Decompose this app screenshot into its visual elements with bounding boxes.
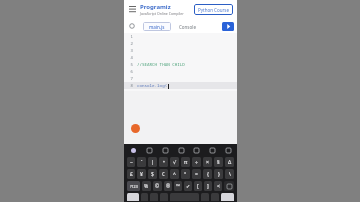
staticText: ] bbox=[207, 183, 209, 190]
staticText: ™ bbox=[176, 183, 180, 190]
staticText: 4 bbox=[130, 55, 133, 60]
button[interactable]: Enter bbox=[221, 193, 234, 201]
button[interactable]: % bbox=[142, 181, 151, 191]
button[interactable]: π bbox=[181, 157, 190, 167]
staticText: £ bbox=[130, 171, 133, 178]
button[interactable]: = bbox=[192, 169, 201, 179]
button[interactable]: Python Course bbox=[194, 4, 233, 15]
staticText: 7 bbox=[130, 76, 133, 81]
staticText: Δ bbox=[228, 159, 232, 166]
staticText: ✓ bbox=[186, 183, 191, 189]
staticText: JavaScript Online Compiler bbox=[140, 11, 184, 16]
button[interactable]: Translate bbox=[191, 145, 201, 155]
button[interactable]: £ bbox=[127, 169, 135, 179]
staticText: Programiz bbox=[140, 3, 171, 11]
button[interactable]: ABC bbox=[127, 193, 139, 201]
button[interactable]: • bbox=[159, 157, 168, 167]
staticText: × bbox=[206, 159, 209, 166]
button[interactable]: § bbox=[214, 157, 223, 167]
button[interactable]: Sticker bbox=[144, 145, 154, 155]
button[interactable]: ¥ bbox=[137, 169, 146, 179]
button[interactable]: [ bbox=[194, 181, 202, 191]
button[interactable]: √ bbox=[170, 157, 179, 167]
button[interactable]: main.js bbox=[143, 22, 171, 31]
button[interactable]: Run bbox=[222, 22, 234, 31]
button[interactable]: ÷ bbox=[192, 157, 201, 167]
button[interactable]: ® bbox=[164, 181, 172, 191]
staticText: ?123 bbox=[130, 184, 138, 189]
button[interactable]: Backspace bbox=[224, 181, 234, 191]
button[interactable]: < bbox=[214, 181, 222, 191]
button[interactable]: $ bbox=[148, 169, 157, 179]
button[interactable]: Voice input bbox=[223, 145, 233, 155]
staticText: π bbox=[184, 159, 188, 166]
button[interactable]: ✓ bbox=[184, 181, 192, 191]
staticText: © bbox=[155, 183, 160, 190]
staticText: ~ bbox=[130, 159, 133, 166]
staticText: ` bbox=[141, 159, 143, 166]
staticText: ¥ bbox=[140, 171, 143, 178]
button[interactable]: Console bbox=[176, 22, 199, 31]
staticText: 5 bbox=[130, 62, 133, 67]
button[interactable]: GIF bbox=[160, 145, 170, 155]
staticText: } bbox=[218, 171, 220, 178]
button[interactable]: © bbox=[153, 181, 162, 191]
staticText: 8 bbox=[130, 83, 133, 88]
button[interactable]: × bbox=[203, 157, 212, 167]
button[interactable]: Format code bbox=[127, 21, 137, 31]
button[interactable]: ^ bbox=[170, 169, 179, 179]
button[interactable]: Comma bbox=[141, 193, 148, 201]
button[interactable]: } bbox=[214, 169, 223, 179]
staticText: ® bbox=[166, 183, 171, 190]
button[interactable]: \ bbox=[225, 169, 234, 179]
staticText: 3 bbox=[130, 48, 133, 53]
staticText: console.log( bbox=[137, 83, 168, 89]
button[interactable]: Chat assistant bbox=[131, 124, 140, 133]
staticText: = bbox=[195, 171, 198, 178]
staticText: 1 bbox=[130, 34, 133, 39]
button[interactable]: ° bbox=[181, 169, 190, 179]
staticText: main.js bbox=[149, 24, 165, 30]
button[interactable]: ~ bbox=[127, 157, 135, 167]
staticText: [ bbox=[197, 183, 199, 190]
staticText: Python Course bbox=[198, 7, 229, 13]
staticText: § bbox=[217, 159, 220, 166]
staticText: • bbox=[163, 159, 165, 166]
staticText: Console bbox=[179, 24, 196, 30]
staticText: \ bbox=[229, 171, 231, 178]
button[interactable]: Δ bbox=[225, 157, 234, 167]
staticText: √ bbox=[173, 159, 177, 165]
staticText: $ bbox=[151, 171, 154, 178]
staticText: ÷ bbox=[195, 159, 198, 166]
button[interactable]: Menu bbox=[128, 5, 137, 14]
staticText: | bbox=[151, 159, 154, 166]
button[interactable]: ¢ bbox=[159, 169, 168, 179]
button[interactable]: { bbox=[203, 169, 212, 179]
staticText: % bbox=[144, 183, 149, 190]
button[interactable]: Clipboard bbox=[128, 145, 138, 155]
staticText: ^ bbox=[173, 171, 176, 178]
button[interactable]: ] bbox=[204, 181, 212, 191]
button[interactable]: ?123 bbox=[127, 181, 140, 191]
button[interactable]: Theme bbox=[207, 145, 217, 155]
staticText: //SEARCH THAN CHILD bbox=[137, 62, 185, 68]
staticText: 6 bbox=[130, 69, 133, 74]
staticText: < bbox=[217, 183, 220, 190]
staticText: ¢ bbox=[162, 171, 165, 178]
staticText: 2 bbox=[130, 41, 133, 46]
button[interactable]: ` bbox=[137, 157, 146, 167]
staticText: ° bbox=[184, 171, 187, 178]
button[interactable]: ™ bbox=[174, 181, 182, 191]
staticText: { bbox=[207, 171, 209, 178]
button[interactable]: Settings bbox=[176, 145, 186, 155]
button[interactable]: | bbox=[148, 157, 157, 167]
